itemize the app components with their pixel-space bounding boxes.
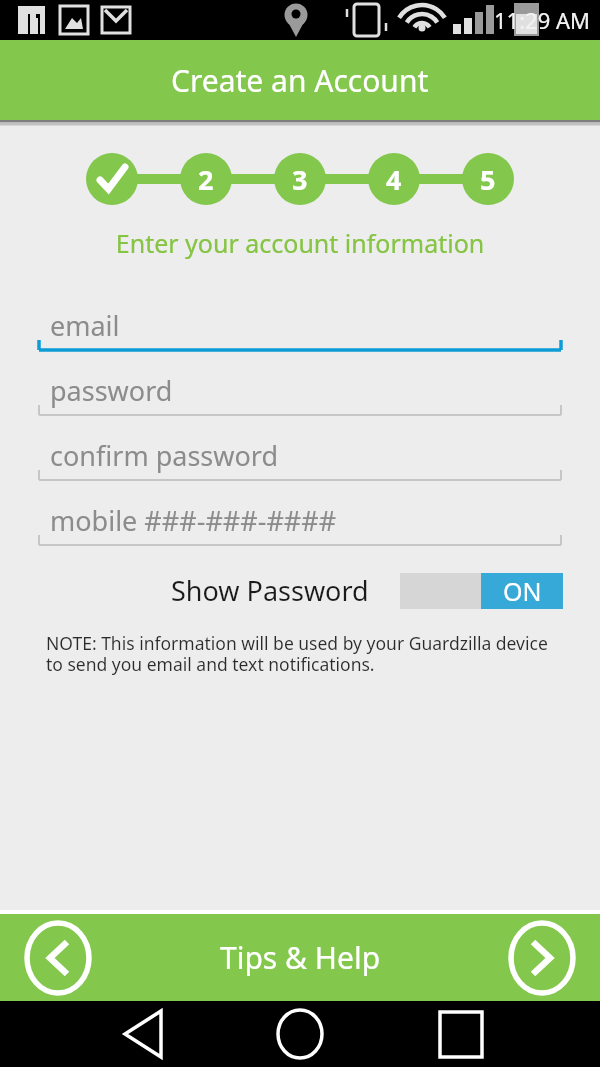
staticText: Enter your account information	[0, 226, 600, 260]
staticText: mobile ###-###-####	[50, 502, 337, 539]
button[interactable]: password	[0, 361, 600, 426]
staticText: 5	[480, 161, 496, 198]
staticText: email	[50, 307, 120, 344]
button[interactable]: Previous	[23, 923, 93, 993]
staticText: 3	[292, 161, 308, 198]
staticText: 2	[198, 161, 214, 198]
button[interactable]: email	[0, 296, 600, 361]
staticText: password	[50, 372, 173, 409]
button[interactable]: Next	[507, 923, 577, 993]
staticText: Create an Account	[171, 60, 429, 101]
staticText: 11:29 AM	[494, 5, 590, 35]
staticText: 4	[386, 161, 402, 198]
staticText: confirm password	[50, 437, 279, 474]
button[interactable]: Tips & Help	[220, 937, 381, 978]
button[interactable]: confirm password	[0, 426, 600, 491]
staticText: ON	[503, 574, 542, 608]
button[interactable]: mobile ###-###-####	[0, 491, 600, 556]
staticText: Tips & Help	[220, 937, 381, 978]
button[interactable]: Show Password toggle, on	[400, 573, 563, 609]
staticText: NOTE: This information will be used by y…	[46, 631, 562, 676]
staticText: Show Password	[171, 572, 369, 609]
